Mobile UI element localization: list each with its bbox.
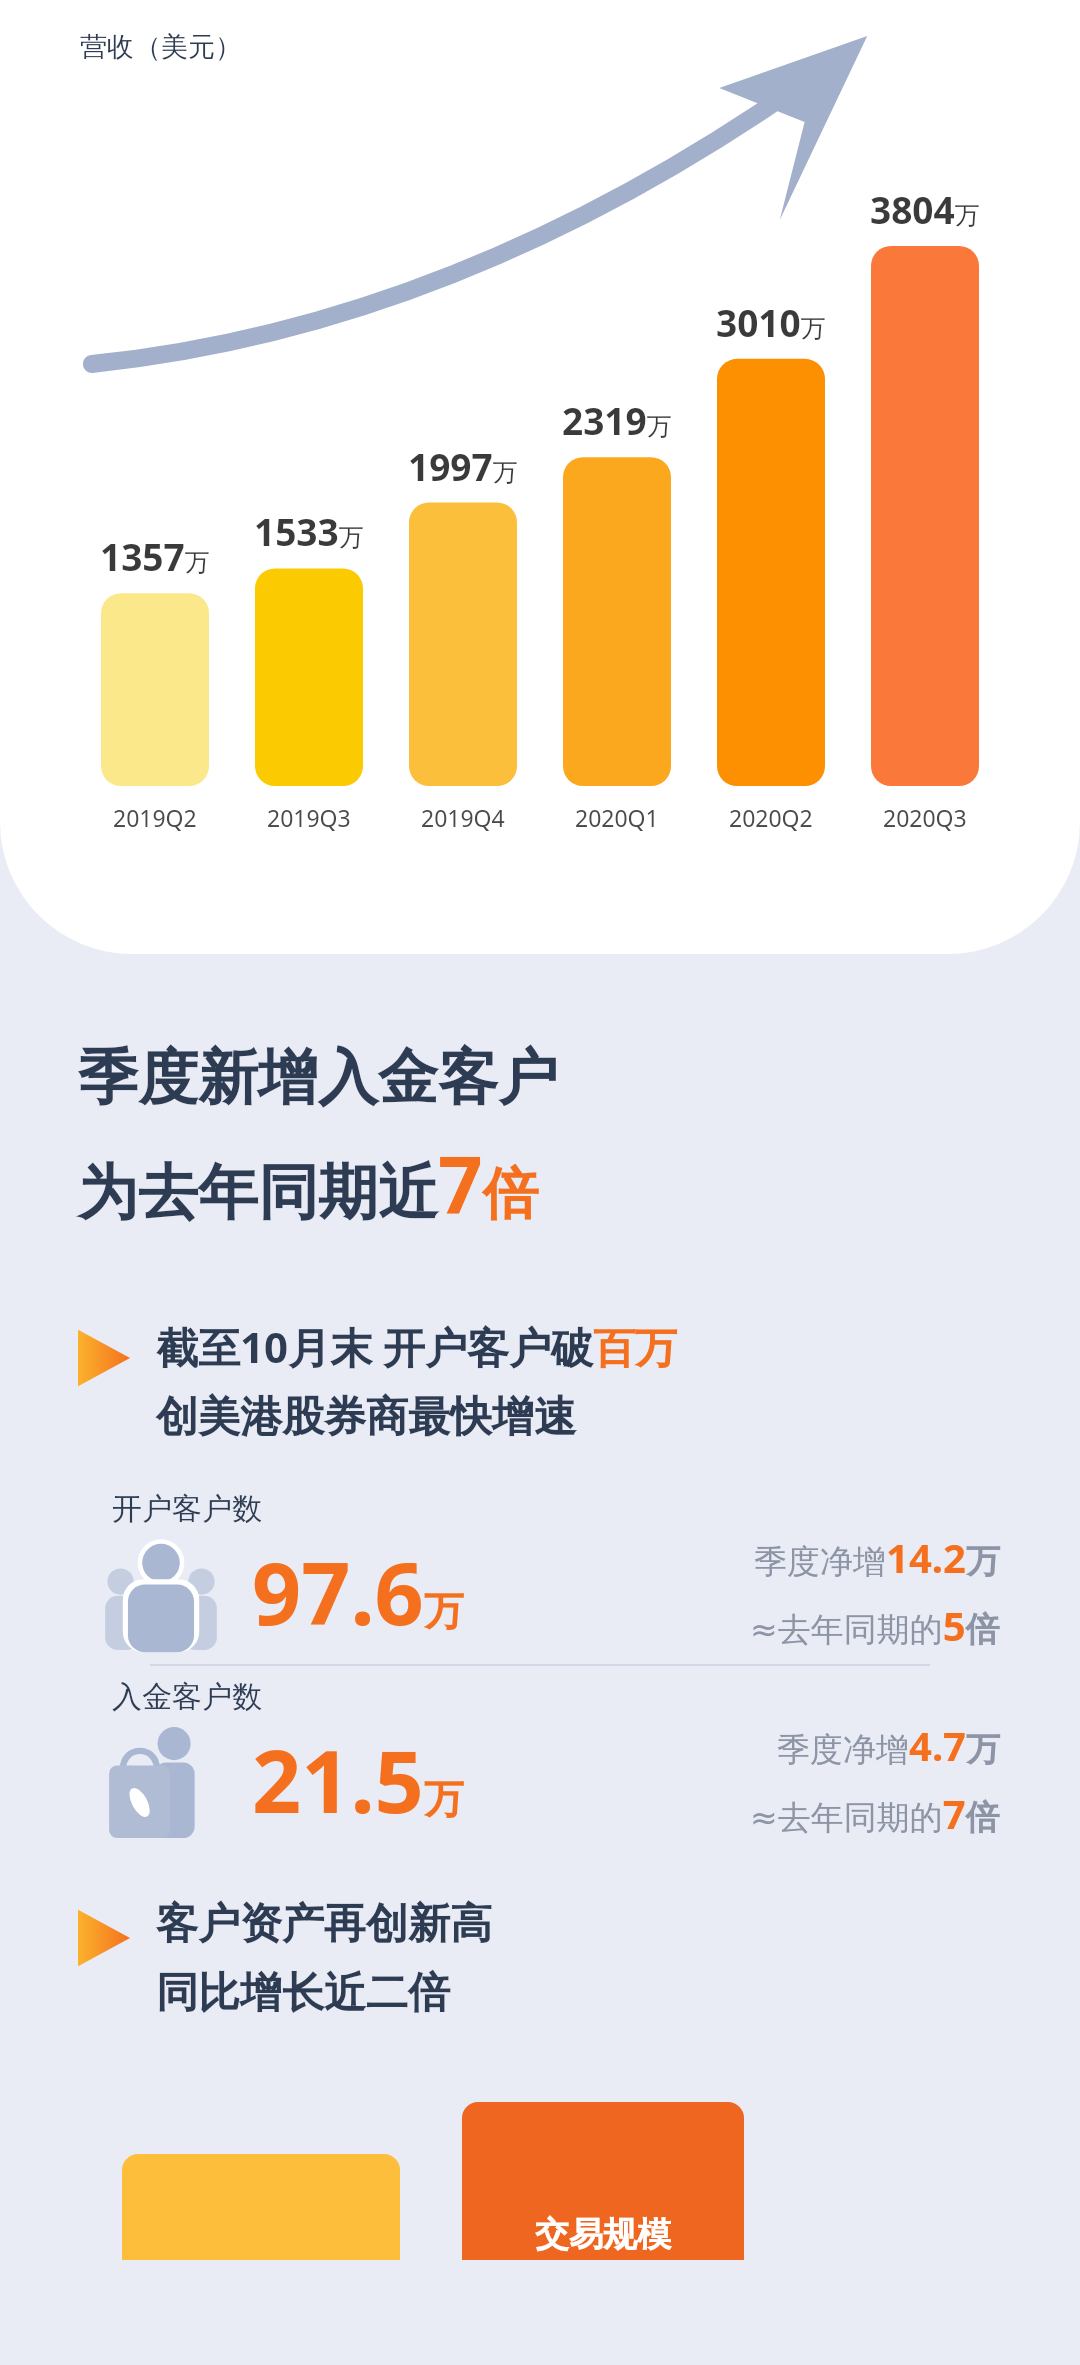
- staticText: 3804万: [870, 184, 980, 234]
- staticText: 创美港股券商最快增速: [156, 1391, 576, 1444]
- staticText: 97.6万: [252, 1533, 464, 1650]
- staticText: 开户客户数: [112, 1490, 262, 1528]
- staticText: 客户资产再创新高: [156, 1898, 492, 1951]
- button[interactable]: 开户客户数: [0, 1490, 1080, 1652]
- staticText: 2019Q4: [421, 802, 505, 833]
- staticText: 交易规模: [535, 2213, 671, 2256]
- staticText: 2020Q3: [883, 802, 967, 833]
- staticText: 季度新增入金客户: [78, 1040, 558, 1116]
- staticText: 营收（美元）: [80, 30, 242, 64]
- staticText: 同比增长近二倍: [156, 1967, 450, 2020]
- button[interactable]: 客户资产再创新高: [0, 1898, 1080, 2020]
- staticText: 2020Q2: [729, 802, 813, 833]
- staticText: 2319万: [562, 395, 672, 445]
- button[interactable]: 入金客户数: [0, 1678, 1080, 1840]
- staticText: 21.5万: [252, 1721, 464, 1838]
- staticText: 2019Q2: [113, 802, 197, 833]
- staticText: 1533万: [254, 506, 364, 556]
- staticText: ≈去年同期的7倍: [750, 1786, 1000, 1840]
- staticText: 季度净增14.2万: [754, 1530, 1000, 1584]
- button[interactable]: 截至10月末 开户客户破百万: [0, 1318, 1080, 1444]
- other: Funded customers: [104, 1720, 218, 1838]
- staticText: 入金客户数: [112, 1678, 262, 1716]
- staticText: 1997万: [408, 441, 518, 491]
- staticText: 1357万: [100, 531, 210, 581]
- staticText: 为去年同期近7倍: [78, 1130, 539, 1236]
- other: Account customers: [104, 1532, 218, 1650]
- staticText: 3010万: [716, 297, 826, 347]
- staticText: 2019Q3: [267, 802, 351, 833]
- staticText: 截至10月末 开户客户破百万: [156, 1318, 677, 1375]
- staticText: 季度净增4.7万: [777, 1718, 1000, 1772]
- staticText: ≈去年同期的5倍: [750, 1598, 1000, 1652]
- staticText: 2020Q1: [575, 802, 659, 833]
